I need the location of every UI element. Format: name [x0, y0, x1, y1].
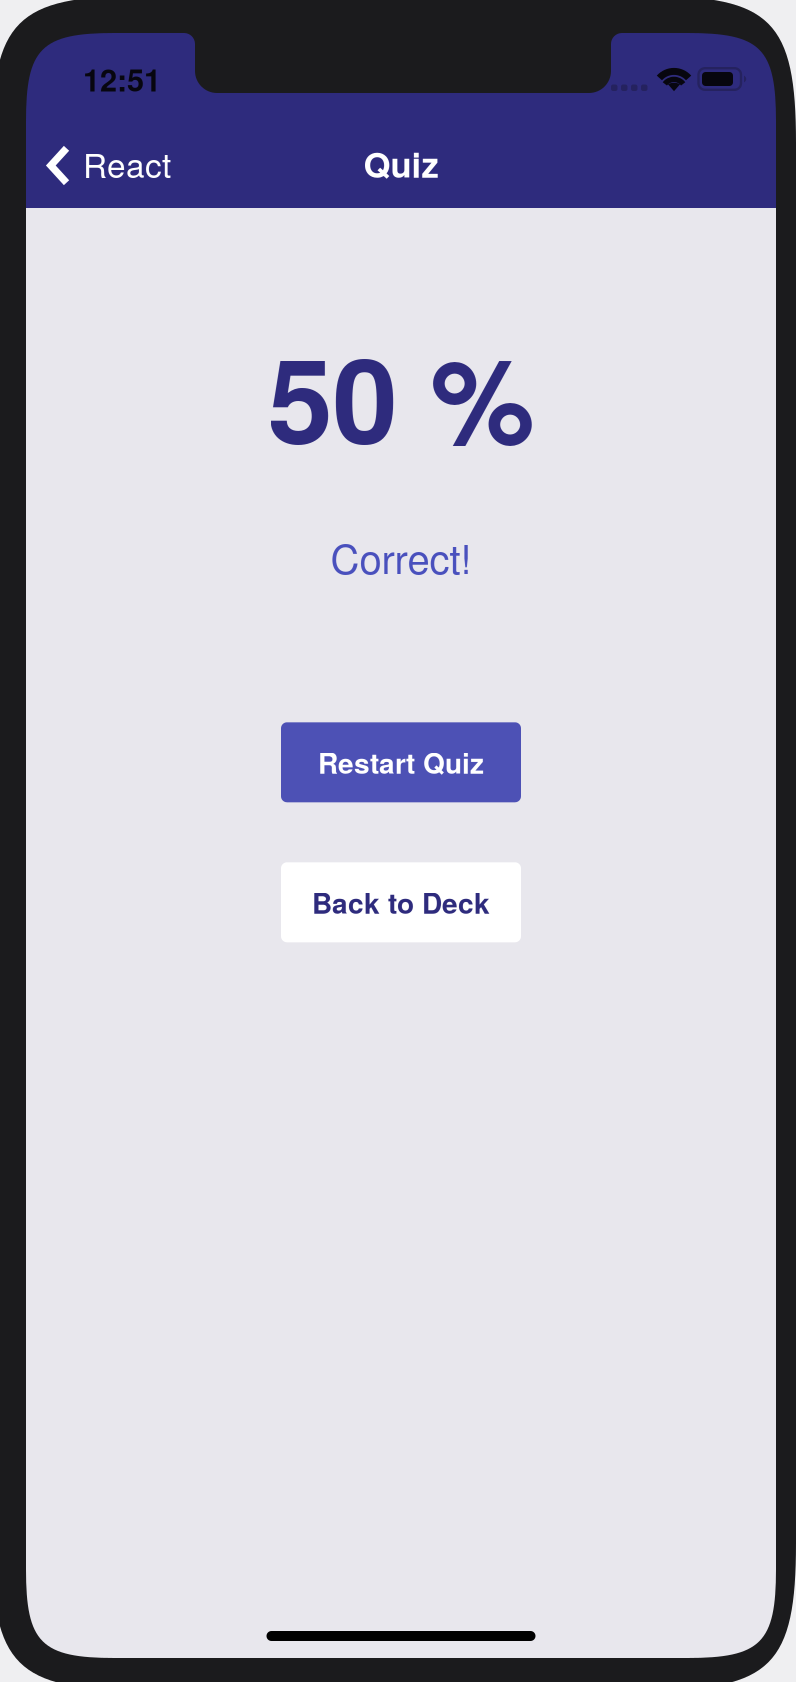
staticText: Correct! — [330, 528, 471, 585]
button[interactable]: React — [26, 131, 185, 196]
staticText: Restart Quiz — [318, 742, 484, 782]
staticText: Back to Deck — [312, 882, 490, 922]
staticText: 50 % — [267, 312, 534, 480]
staticText: Quiz — [363, 139, 438, 188]
button[interactable]: Restart Quiz — [281, 722, 521, 802]
staticText: 12:51 — [83, 57, 161, 101]
button[interactable]: Back to Deck — [281, 862, 521, 942]
staticText: React — [83, 140, 171, 187]
